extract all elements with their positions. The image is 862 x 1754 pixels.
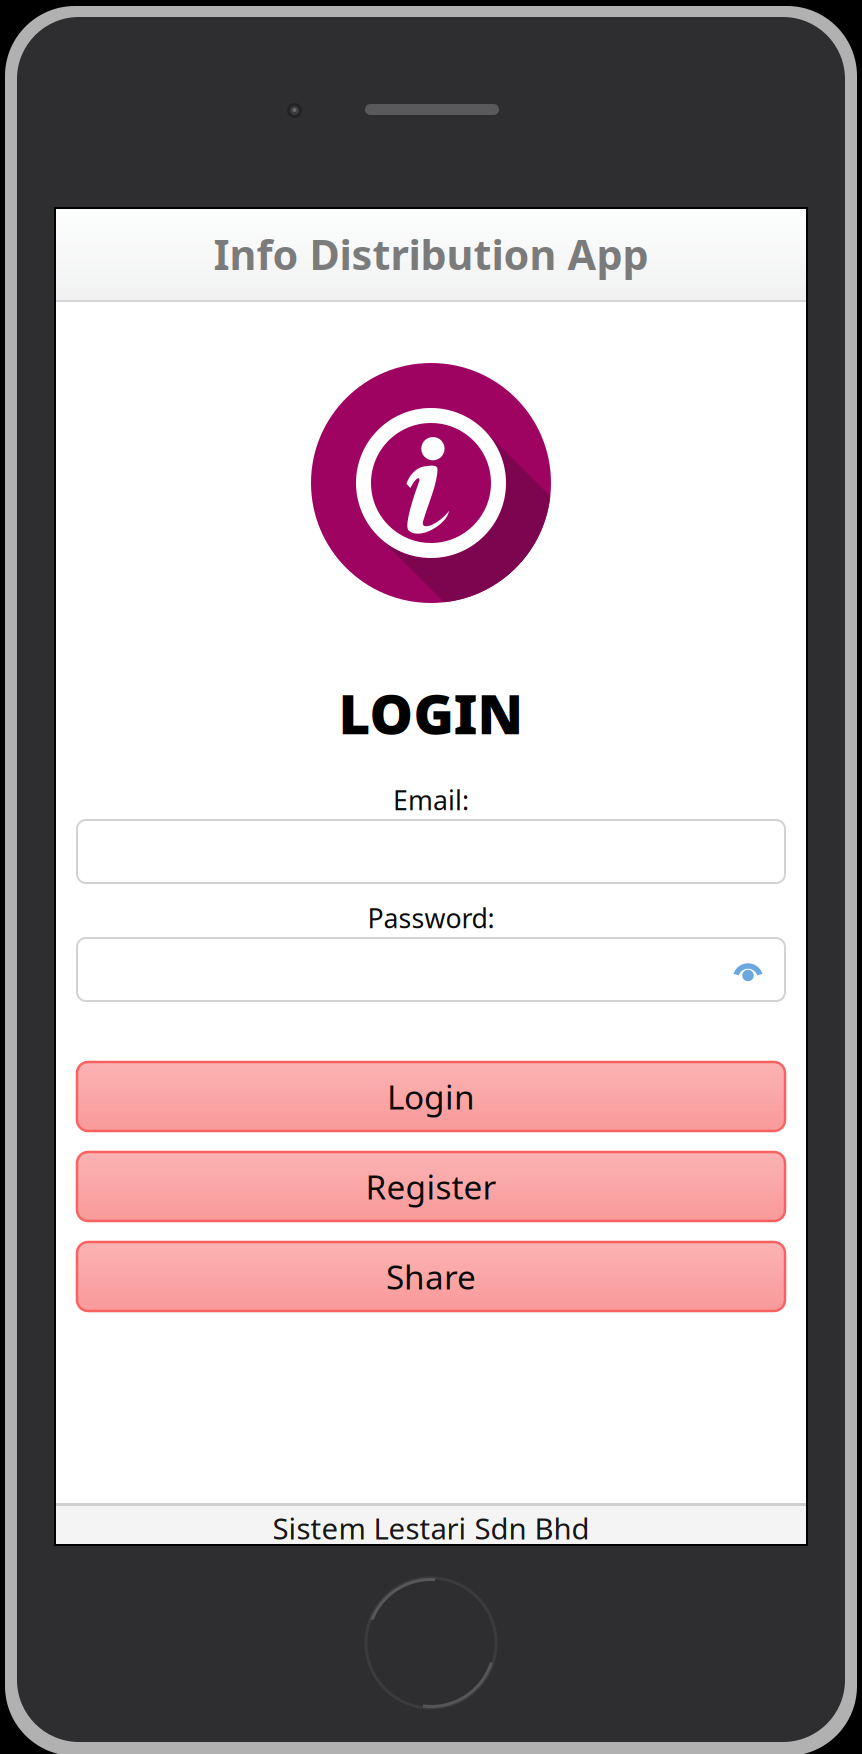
button[interactable]: Password	[77, 938, 785, 1001]
button[interactable]: Show password	[733, 956, 763, 982]
button[interactable]: Share	[77, 1242, 785, 1311]
staticText: Login	[387, 1074, 475, 1119]
staticText: Info Distribution App	[213, 227, 648, 281]
staticText: Register	[365, 1164, 496, 1209]
staticText: LOGIN	[338, 677, 523, 749]
button[interactable]: Register	[77, 1152, 785, 1221]
staticText: Sistem Lestari Sdn Bhd	[272, 1508, 589, 1547]
button[interactable]: Email	[77, 820, 785, 883]
button[interactable]: Login	[77, 1062, 785, 1131]
button[interactable]: Home	[366, 1578, 496, 1708]
staticText: Share	[386, 1254, 476, 1299]
staticText: Email:	[393, 782, 469, 818]
staticText: Password:	[367, 900, 494, 936]
